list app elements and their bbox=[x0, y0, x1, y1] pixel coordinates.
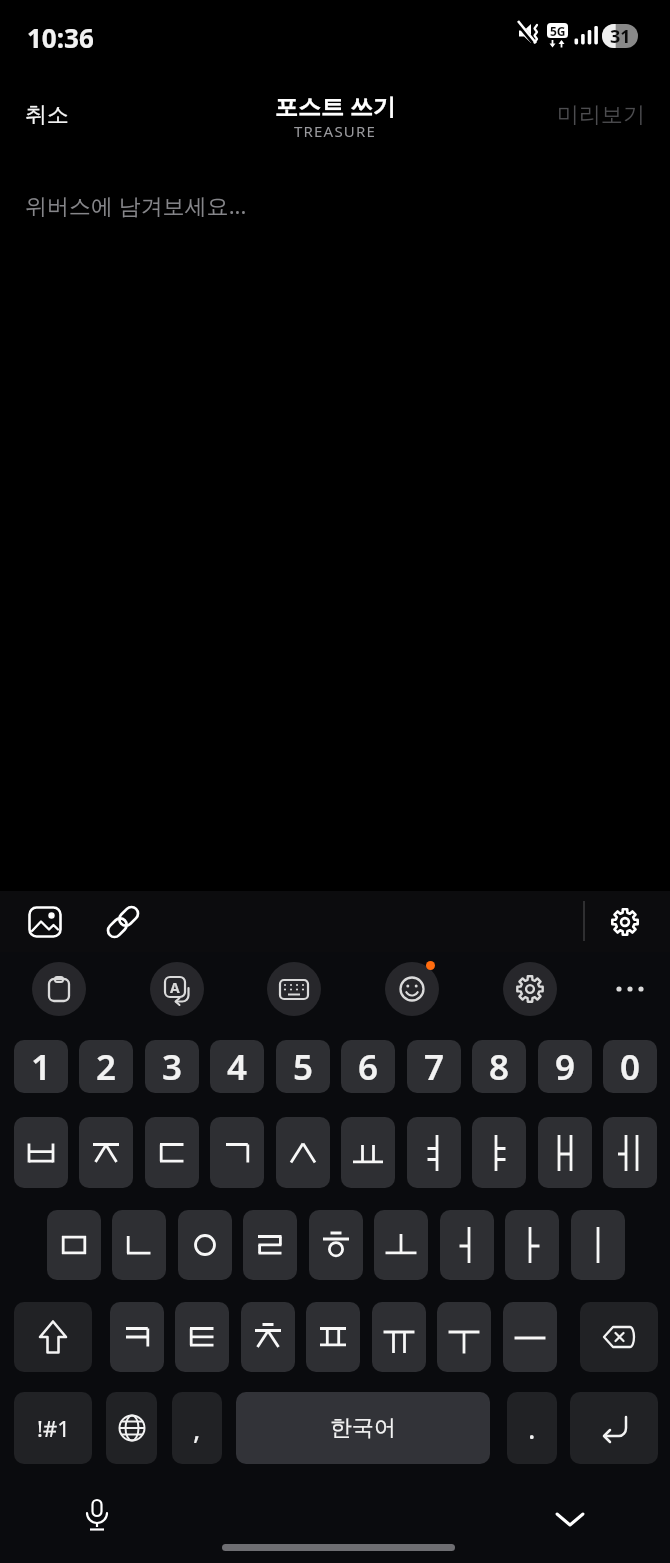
button[interactable] bbox=[505, 1210, 559, 1280]
button[interactable]: 5 bbox=[276, 1040, 330, 1093]
button[interactable] bbox=[538, 1117, 592, 1188]
staticText: TREASURE bbox=[294, 121, 377, 141]
button[interactable] bbox=[570, 1392, 658, 1464]
button[interactable] bbox=[145, 1117, 199, 1188]
staticText: 6 bbox=[358, 1043, 379, 1091]
button[interactable] bbox=[372, 1302, 426, 1372]
button[interactable] bbox=[175, 1302, 229, 1372]
button[interactable] bbox=[241, 1302, 295, 1372]
staticText: A bbox=[170, 978, 180, 997]
button[interactable] bbox=[178, 1210, 232, 1280]
staticText: , bbox=[193, 1409, 201, 1447]
button[interactable] bbox=[580, 1302, 658, 1372]
button[interactable]: . bbox=[507, 1392, 557, 1464]
button[interactable] bbox=[374, 1210, 428, 1280]
staticText: 취소 bbox=[25, 101, 69, 129]
staticText: 5 bbox=[293, 1043, 314, 1091]
button[interactable] bbox=[14, 1117, 68, 1188]
button[interactable]: 1 bbox=[14, 1040, 68, 1093]
button[interactable]: 7 bbox=[407, 1040, 461, 1093]
button[interactable] bbox=[210, 1117, 264, 1188]
staticText: 미리보기 bbox=[557, 101, 645, 129]
staticText: 7 bbox=[424, 1043, 445, 1091]
button[interactable]: 6 bbox=[341, 1040, 395, 1093]
staticText: 0 bbox=[620, 1043, 641, 1091]
button[interactable]: !#1 bbox=[14, 1392, 92, 1464]
staticText: 4 bbox=[227, 1043, 248, 1091]
button[interactable] bbox=[545, 1495, 595, 1545]
staticText: 3 bbox=[162, 1043, 183, 1091]
button[interactable]: 9 bbox=[538, 1040, 592, 1093]
button[interactable] bbox=[110, 1302, 164, 1372]
staticText: 5G bbox=[550, 23, 566, 38]
button[interactable] bbox=[598, 896, 652, 948]
button[interactable] bbox=[605, 962, 655, 1016]
button[interactable] bbox=[18, 896, 72, 948]
staticText: 9 bbox=[555, 1043, 576, 1091]
button[interactable] bbox=[14, 1302, 92, 1372]
staticText: . bbox=[528, 1409, 536, 1447]
button[interactable]: 8 bbox=[472, 1040, 526, 1093]
staticText: 10:36 bbox=[27, 20, 94, 55]
button[interactable] bbox=[243, 1210, 297, 1280]
button[interactable] bbox=[437, 1302, 491, 1372]
button[interactable] bbox=[407, 1117, 461, 1188]
staticText: !#1 bbox=[37, 1413, 70, 1443]
staticText: 31 bbox=[610, 24, 631, 48]
button[interactable] bbox=[112, 1210, 166, 1280]
button[interactable] bbox=[309, 1210, 363, 1280]
button[interactable]: , bbox=[172, 1392, 222, 1464]
button[interactable] bbox=[341, 1117, 395, 1188]
button[interactable]: 0 bbox=[603, 1040, 657, 1093]
staticText: 포스트 쓰기 bbox=[275, 90, 396, 121]
button[interactable] bbox=[276, 1117, 330, 1188]
button[interactable]: 2 bbox=[79, 1040, 133, 1093]
button[interactable]: A bbox=[150, 962, 204, 1016]
button[interactable]: 취소 bbox=[25, 101, 69, 129]
button[interactable] bbox=[267, 962, 321, 1016]
staticText: 한국어 bbox=[330, 1414, 396, 1442]
button[interactable] bbox=[306, 1302, 360, 1372]
button[interactable] bbox=[32, 962, 86, 1016]
staticText: 2 bbox=[96, 1043, 117, 1091]
staticText: 1 bbox=[31, 1043, 52, 1091]
button[interactable]: 3 bbox=[145, 1040, 199, 1093]
button[interactable] bbox=[96, 896, 150, 948]
button[interactable] bbox=[106, 1392, 157, 1464]
button[interactable]: 4 bbox=[210, 1040, 264, 1093]
button[interactable]: 미리보기 bbox=[557, 101, 645, 129]
button[interactable] bbox=[79, 1117, 133, 1188]
button[interactable] bbox=[472, 1117, 526, 1188]
button[interactable]: 한국어 bbox=[236, 1392, 490, 1464]
button[interactable] bbox=[72, 1490, 122, 1540]
button[interactable] bbox=[571, 1210, 625, 1280]
button[interactable] bbox=[440, 1210, 494, 1280]
button[interactable] bbox=[385, 962, 439, 1016]
staticText: 8 bbox=[489, 1043, 510, 1091]
staticText: 위버스에 남겨보세요... bbox=[25, 190, 247, 220]
button[interactable] bbox=[503, 962, 557, 1016]
button[interactable] bbox=[503, 1302, 557, 1372]
button[interactable] bbox=[47, 1210, 101, 1280]
button[interactable] bbox=[603, 1117, 657, 1188]
